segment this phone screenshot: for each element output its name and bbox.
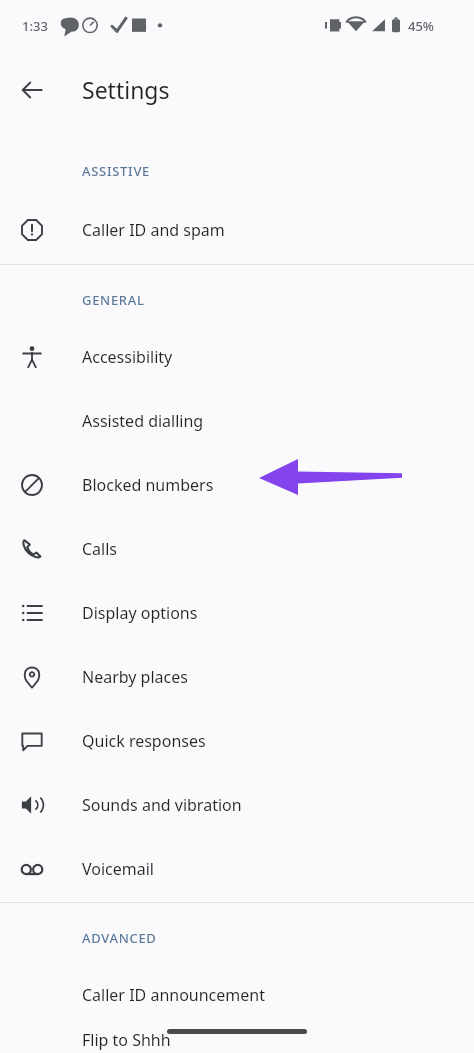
staticText: Blocked numbers [82,474,214,496]
staticText: Flip to Shhh [82,1029,171,1051]
button[interactable]: Sounds and vibration [0,773,474,837]
staticText: Assisted dialling [82,410,204,432]
staticText: GENERAL [82,291,145,309]
staticText: ADVANCED [82,929,157,947]
staticText: Caller ID and spam [82,219,225,241]
button[interactable]: Caller ID announcement [0,963,474,1027]
staticText: Accessibility [82,346,173,368]
staticText: Nearby places [82,666,188,688]
button[interactable]: Calls [0,517,474,581]
button[interactable]: Back [10,68,54,112]
staticText: Display options [82,602,198,624]
staticText: Quick responses [82,730,206,752]
button[interactable]: Display options [0,581,474,645]
button[interactable]: Assisted dialling [0,389,474,453]
staticText: Sounds and vibration [82,794,242,816]
staticText: Caller ID announcement [82,984,265,1006]
button[interactable]: Blocked numbers [0,453,474,517]
button[interactable]: Voicemail [0,837,474,901]
staticText: Settings [82,74,170,105]
button[interactable]: Caller ID and spam [0,198,474,262]
staticText: Voicemail [82,858,154,880]
button[interactable]: Nearby places [0,645,474,709]
button[interactable]: Quick responses [0,709,474,773]
button[interactable]: Flip to Shhh [0,1027,474,1053]
staticText: 45% [408,17,434,35]
staticText: ASSISTIVE [82,162,151,180]
button[interactable]: Accessibility [0,325,474,389]
staticText: Calls [82,538,118,560]
staticText: 1:33 [22,17,48,35]
